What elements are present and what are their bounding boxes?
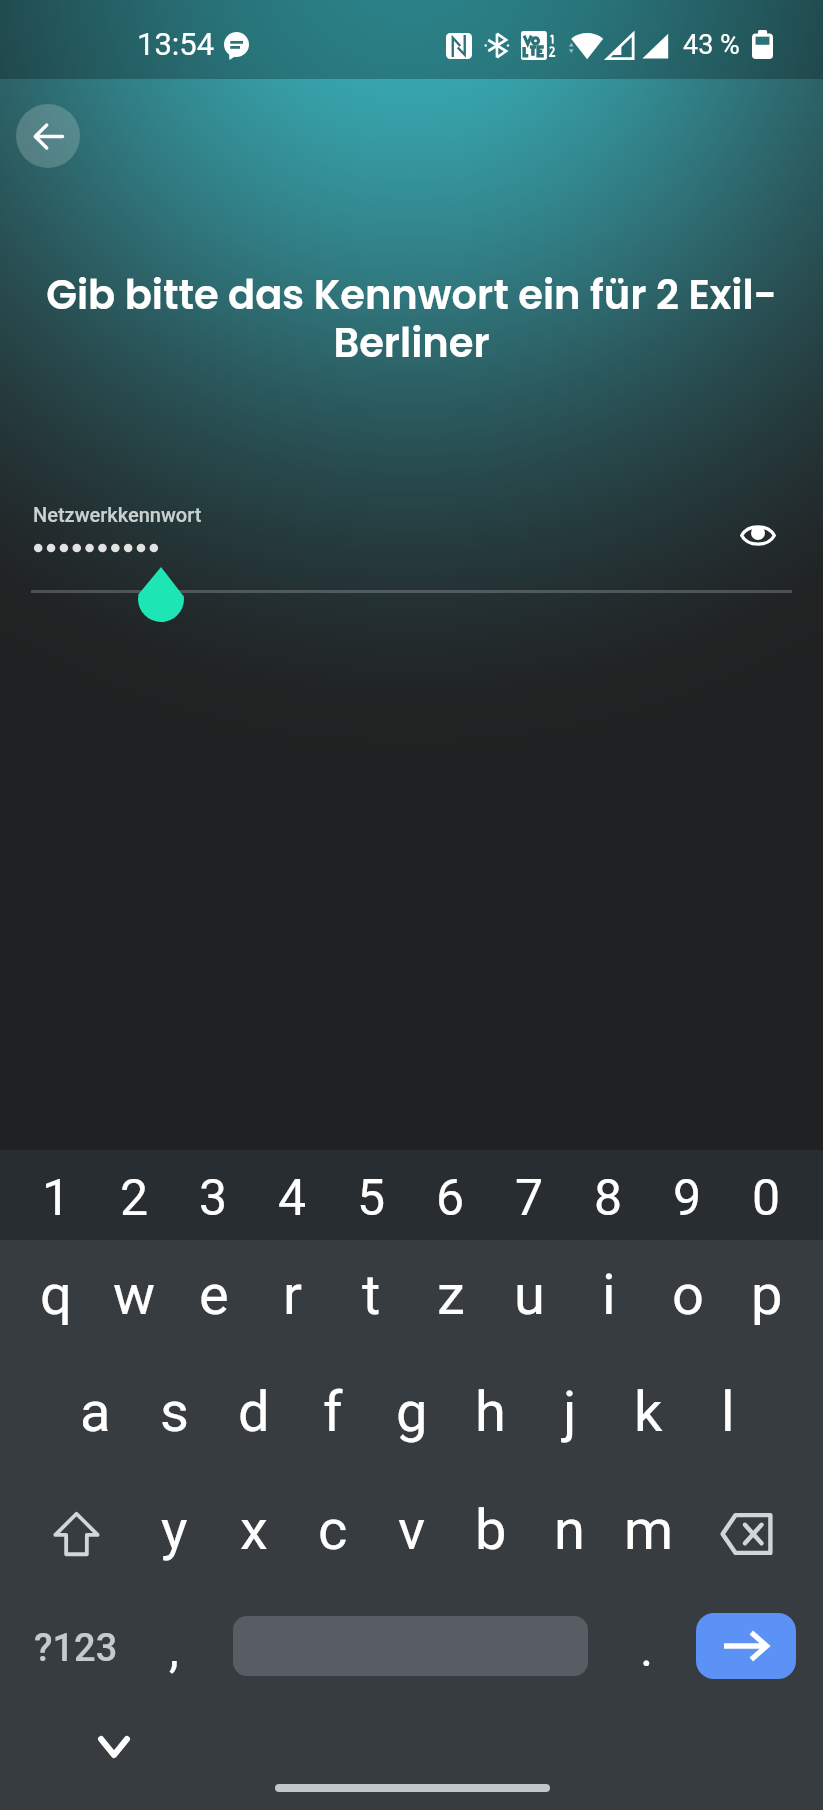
staticText: y (161, 1497, 188, 1563)
staticText: v (398, 1497, 426, 1563)
staticText: d (238, 1379, 270, 1445)
button[interactable]: f (293, 1357, 372, 1475)
button[interactable]: 0 (727, 1150, 806, 1240)
staticText: h (475, 1379, 506, 1445)
button[interactable]: y (135, 1475, 214, 1592)
staticText: j (563, 1379, 577, 1445)
button[interactable]: 4 (253, 1150, 332, 1240)
button[interactable]: p (727, 1240, 806, 1357)
button[interactable]: 2 (95, 1150, 174, 1240)
staticText: o (672, 1262, 704, 1328)
button[interactable]: s (135, 1357, 214, 1475)
staticText: Gib bitte das Kennwort ein für 2 Exil-Be… (28, 267, 795, 371)
button[interactable]: 3 (174, 1150, 253, 1240)
staticText: p (751, 1262, 783, 1328)
button[interactable]: m (609, 1475, 688, 1592)
button[interactable]: 9 (648, 1150, 727, 1240)
button[interactable]: k (609, 1357, 688, 1475)
staticText: l (721, 1379, 735, 1445)
button[interactable]: Space (213, 1592, 608, 1700)
button[interactable]: x (214, 1475, 293, 1592)
staticText: 13:54 (137, 26, 215, 62)
button[interactable]: g (372, 1357, 451, 1475)
button[interactable]: l (688, 1357, 767, 1475)
staticText: k (634, 1379, 663, 1445)
staticText: 6 (436, 1169, 465, 1228)
button[interactable]: 5 (332, 1150, 411, 1240)
staticText: 9 (673, 1169, 702, 1228)
staticText: 43 % (683, 29, 740, 61)
staticText: 7 (515, 1169, 544, 1228)
staticText: q (40, 1262, 72, 1328)
button[interactable]: , (135, 1592, 213, 1700)
staticText: u (514, 1262, 545, 1328)
staticText: . (640, 1620, 654, 1679)
button[interactable]: Enter (696, 1613, 796, 1679)
button[interactable]: n (530, 1475, 609, 1592)
button[interactable]: Back (16, 104, 80, 168)
staticText: 8 (594, 1169, 623, 1228)
button[interactable]: q (17, 1240, 95, 1357)
button[interactable]: 7 (490, 1150, 569, 1240)
staticText: z (437, 1262, 465, 1328)
button[interactable]: a (56, 1357, 135, 1475)
button[interactable]: Backspace (688, 1475, 806, 1592)
staticText: m (624, 1497, 674, 1563)
staticText: Netzwerkkennwort (33, 503, 202, 526)
staticText: 1 (42, 1169, 71, 1228)
staticText: g (396, 1379, 428, 1445)
staticText: t (362, 1262, 381, 1328)
button[interactable]: ?123 (17, 1592, 135, 1700)
staticText: c (318, 1497, 348, 1563)
staticText: i (602, 1262, 616, 1328)
button[interactable]: r (253, 1240, 332, 1357)
button[interactable]: t (332, 1240, 411, 1357)
button[interactable]: i (569, 1240, 648, 1357)
staticText: , (169, 1620, 179, 1679)
button[interactable]: 6 (411, 1150, 490, 1240)
button[interactable]: o (648, 1240, 727, 1357)
staticText: s (160, 1379, 189, 1445)
staticText: r (283, 1262, 302, 1328)
button[interactable]: h (451, 1357, 530, 1475)
button[interactable]: e (174, 1240, 253, 1357)
button[interactable]: w (95, 1240, 174, 1357)
staticText: 2 (120, 1169, 149, 1228)
button[interactable]: c (293, 1475, 372, 1592)
button[interactable]: Hide keyboard (89, 1722, 139, 1772)
staticText: e (199, 1262, 229, 1328)
button[interactable]: Shift (17, 1475, 135, 1592)
button[interactable]: z (411, 1240, 490, 1357)
staticText: 4 (278, 1169, 307, 1228)
button[interactable]: v (372, 1475, 451, 1592)
button[interactable]: d (214, 1357, 293, 1475)
button[interactable]: . (608, 1592, 686, 1700)
button[interactable]: u (490, 1240, 569, 1357)
staticText: ?123 (34, 1626, 118, 1671)
button[interactable]: j (530, 1357, 609, 1475)
staticText: b (475, 1497, 507, 1563)
button[interactable]: 8 (569, 1150, 648, 1240)
button[interactable]: Show password (729, 507, 786, 564)
button[interactable]: b (451, 1475, 530, 1592)
staticText: w (113, 1262, 156, 1328)
staticText: f (323, 1379, 343, 1445)
staticText: 5 (357, 1169, 386, 1228)
staticText: 3 (199, 1169, 228, 1228)
staticText: n (554, 1497, 585, 1563)
staticText: a (80, 1379, 111, 1445)
staticText: 0 (752, 1169, 781, 1228)
staticText: x (240, 1497, 268, 1563)
button[interactable]: 1 (17, 1150, 95, 1240)
